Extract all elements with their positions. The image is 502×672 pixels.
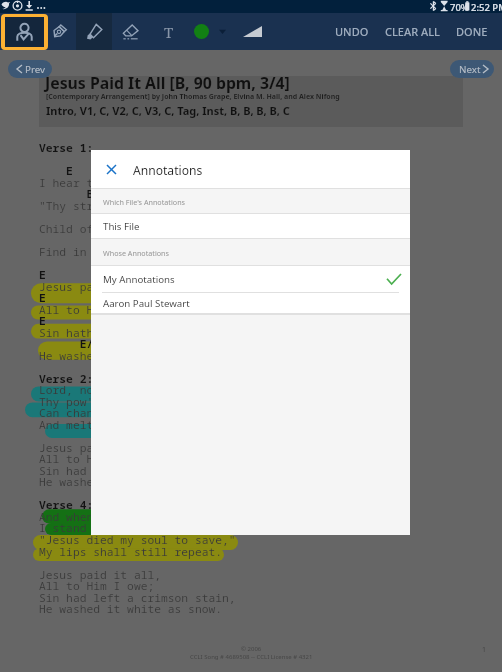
button[interactable]: UNDO (327, 13, 377, 50)
button[interactable]: Close (95, 150, 127, 188)
button[interactable]: Text (152, 13, 186, 50)
staticText: Next (459, 63, 481, 76)
staticText: E (39, 313, 46, 328)
staticText: Verse 2: (39, 371, 94, 386)
staticText: [Contemporary Arrangement] by John Thoma… (46, 92, 340, 102)
staticText: Find in Me thine all in all." (39, 244, 236, 259)
staticText: Jesus Paid It All [B, 90 bpm, 3/4] (45, 72, 290, 94)
staticText: E/B (39, 336, 101, 351)
button[interactable]: Highlighter (76, 13, 112, 50)
staticText: I hear the Savior say, (39, 175, 189, 190)
staticText: Annotations (133, 162, 203, 178)
staticText: B E (39, 186, 162, 201)
button[interactable]: Aaron Paul Stewart (91, 293, 410, 314)
button[interactable]: DONE (448, 13, 496, 50)
staticText: 70% (450, 1, 469, 14)
staticText: Jesus paid it all, (39, 567, 162, 582)
staticText: 1 (482, 645, 487, 655)
staticText: He washed it white as snow. (39, 474, 223, 489)
staticText: Prev (25, 63, 46, 76)
staticText: Whose Annotations (103, 248, 169, 258)
staticText: Sin hath left a crimson stain, (39, 325, 243, 340)
button[interactable]: Prev (8, 60, 52, 78)
staticText: © 2006 (241, 645, 262, 653)
staticText: Verse 4: (39, 497, 94, 512)
button[interactable]: Colour (186, 13, 234, 50)
staticText: He washed it white as snow. (39, 601, 223, 616)
staticText: All to Him I owe; (39, 451, 155, 466)
staticText: CLEAR ALL (385, 24, 440, 39)
staticText: Child of weakness, watch and pray, (39, 221, 270, 236)
staticText: All to Him I owe; (39, 578, 155, 593)
staticText: Jesus paid it all, (39, 440, 162, 455)
staticText: UNDO (335, 24, 369, 39)
staticText: Lord, now indeed I find (39, 382, 195, 397)
button[interactable]: Pen (41, 13, 77, 50)
button[interactable]: Eraser (112, 13, 148, 50)
staticText: Thy pow'r, and Thine alone, (39, 394, 223, 409)
button[interactable]: CLEAR ALL (377, 13, 448, 50)
staticText: And when before the throne (39, 509, 216, 524)
staticText: Verse 1: (39, 140, 94, 155)
staticText: He washed it white as snow. (39, 348, 223, 363)
staticText: "Thy strength indeed is small; (39, 198, 243, 213)
button[interactable]: Annotations (1, 14, 48, 50)
staticText: DONE (456, 24, 488, 39)
staticText: Can change the leper's spots (39, 405, 229, 420)
staticText: My lips shall still repeat. (39, 544, 223, 559)
staticText: All to Him I owe; (39, 302, 155, 317)
staticText: Intro, V1, C, V2, C, V3, C, Tag, Inst, B… (46, 103, 290, 118)
staticText: E (39, 267, 46, 282)
staticText: "Jesus died my soul to save," (39, 532, 236, 547)
staticText: E (39, 290, 46, 305)
button[interactable]: Next (450, 60, 494, 78)
staticText: I stand in Him complete, (39, 520, 202, 535)
staticText: E A E (39, 163, 195, 178)
staticText: Sin had left a crimson stain, (39, 590, 236, 605)
staticText: Aaron Paul Stewart (103, 297, 190, 310)
staticText: Which File's Annotations (103, 197, 186, 207)
staticText: CCLI Song # 4689508 -- CCLI License # 43… (190, 653, 313, 661)
staticText: T (164, 22, 174, 42)
staticText: My Annotations (103, 273, 175, 286)
button[interactable]: Stroke width (234, 13, 270, 50)
staticText: 2:52 PM (471, 1, 502, 14)
button[interactable]: My Annotations (91, 266, 410, 292)
button[interactable]: This File (91, 214, 410, 239)
staticText: And melt the heart of stone. (39, 417, 229, 432)
staticText: Sin had left a crimson stain, (39, 463, 236, 478)
staticText: Jesus paid it all, (39, 279, 162, 294)
staticText: This File (103, 220, 140, 233)
